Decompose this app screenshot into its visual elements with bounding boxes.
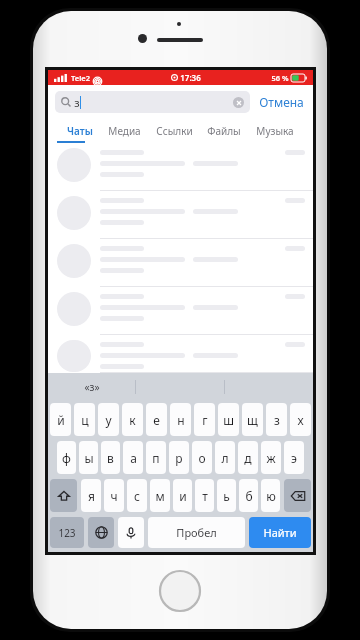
- staticText: х: [297, 412, 304, 428]
- staticText: Файлы: [207, 124, 241, 138]
- button[interactable]: Change keyboard: [88, 517, 114, 548]
- button[interactable]: Shift: [50, 479, 77, 512]
- button[interactable]: ь: [217, 479, 236, 512]
- button[interactable]: Отмена: [257, 92, 306, 112]
- button[interactable]: б: [239, 479, 258, 512]
- button[interactable]: а: [123, 441, 143, 474]
- staticText: г: [202, 412, 208, 428]
- button[interactable]: [48, 191, 313, 239]
- staticText: м: [155, 488, 165, 504]
- staticText: ф: [62, 450, 71, 466]
- staticText: з: [74, 95, 80, 110]
- button[interactable]: Home: [159, 570, 201, 612]
- staticText: 123: [58, 526, 76, 540]
- button[interactable]: щ: [242, 403, 263, 436]
- button[interactable]: [48, 143, 313, 191]
- staticText: 56 %: [271, 73, 289, 83]
- button[interactable]: р: [169, 441, 189, 474]
- button[interactable]: д: [238, 441, 258, 474]
- staticText: ш: [223, 412, 234, 428]
- button[interactable]: Пробел: [148, 517, 245, 548]
- staticText: с: [134, 488, 140, 504]
- staticText: Найти: [263, 525, 297, 540]
- staticText: «з»: [84, 380, 100, 394]
- staticText: а: [130, 450, 137, 466]
- button[interactable]: н: [170, 403, 191, 436]
- button[interactable]: у: [98, 403, 119, 436]
- staticText: п: [152, 450, 160, 466]
- button[interactable]: э: [284, 441, 304, 474]
- staticText: и: [179, 488, 187, 504]
- button[interactable]: г: [194, 403, 215, 436]
- staticText: Отмена: [259, 94, 304, 110]
- staticText: 17:36: [180, 72, 201, 83]
- button[interactable]: ж: [261, 441, 281, 474]
- button[interactable]: с: [127, 479, 147, 512]
- staticText: э: [291, 450, 297, 466]
- staticText: о: [198, 450, 206, 466]
- staticText: л: [221, 450, 229, 466]
- staticText: р: [175, 450, 183, 466]
- staticText: Медиа: [108, 124, 141, 138]
- staticText: ы: [84, 450, 94, 466]
- staticText: ю: [266, 488, 276, 504]
- button[interactable]: ш: [218, 403, 239, 436]
- button[interactable]: [48, 335, 313, 373]
- button[interactable]: Backspace: [284, 479, 311, 512]
- staticText: н: [177, 412, 185, 428]
- staticText: Пробел: [176, 525, 217, 540]
- staticText: ж: [266, 450, 276, 466]
- staticText: е: [153, 412, 160, 428]
- button[interactable]: [48, 239, 313, 287]
- button[interactable]: ч: [104, 479, 124, 512]
- button[interactable]: 123: [50, 517, 84, 548]
- staticText: я: [88, 488, 95, 504]
- staticText: Ссылки: [156, 124, 193, 138]
- button[interactable]: о: [192, 441, 212, 474]
- button[interactable]: Ссылки: [152, 121, 197, 141]
- button[interactable]: х: [290, 403, 311, 436]
- button[interactable]: [48, 287, 313, 335]
- button[interactable]: и: [173, 479, 192, 512]
- button[interactable]: Чаты: [63, 121, 97, 141]
- button[interactable]: з: [55, 91, 250, 113]
- button[interactable]: в: [101, 441, 120, 474]
- button[interactable]: ы: [79, 441, 98, 474]
- button[interactable]: й: [50, 403, 71, 436]
- staticText: ь: [223, 488, 230, 504]
- staticText: у: [105, 412, 112, 428]
- button[interactable]: «з»: [48, 373, 135, 400]
- staticText: щ: [247, 412, 258, 428]
- staticText: к: [129, 412, 136, 428]
- button[interactable]: з: [266, 403, 287, 436]
- button[interactable]: к: [122, 403, 143, 436]
- button[interactable]: м: [150, 479, 170, 512]
- staticText: б: [245, 488, 253, 504]
- button[interactable]: л: [215, 441, 235, 474]
- button[interactable]: Dictate: [118, 517, 144, 548]
- button[interactable]: ю: [261, 479, 280, 512]
- staticText: ц: [81, 412, 89, 428]
- button[interactable]: п: [146, 441, 166, 474]
- staticText: з: [274, 412, 280, 428]
- staticText: ч: [110, 488, 118, 504]
- staticText: й: [57, 412, 65, 428]
- button[interactable]: Медиа: [104, 121, 145, 141]
- button[interactable]: я: [81, 479, 101, 512]
- button[interactable]: ц: [74, 403, 95, 436]
- staticText: Чаты: [67, 124, 93, 138]
- staticText: Tele2: [71, 73, 90, 83]
- staticText: д: [244, 450, 252, 466]
- button[interactable]: Файлы: [203, 121, 245, 141]
- button[interactable]: Музыка: [252, 121, 298, 141]
- staticText: т: [202, 488, 208, 504]
- staticText: в: [107, 450, 114, 466]
- button[interactable]: ф: [57, 441, 76, 474]
- button[interactable]: т: [195, 479, 214, 512]
- button[interactable]: Clear: [233, 97, 244, 108]
- button[interactable]: е: [146, 403, 167, 436]
- button[interactable]: Найти: [249, 517, 311, 548]
- staticText: Музыка: [256, 124, 294, 138]
